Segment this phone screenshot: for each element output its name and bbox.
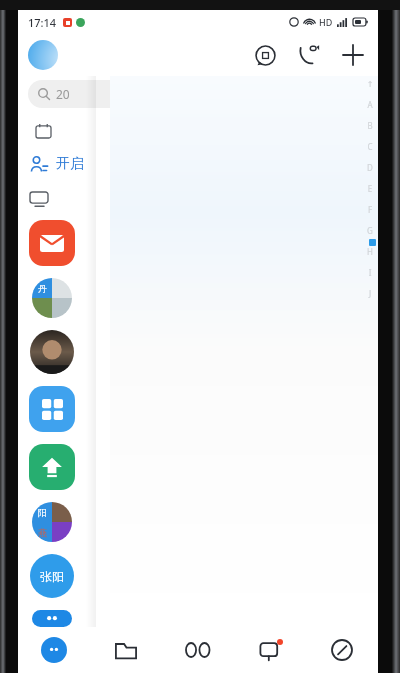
staticText: D bbox=[365, 162, 375, 173]
staticText: 阳 bbox=[38, 507, 47, 518]
button[interactable]: Messages bbox=[234, 627, 306, 673]
staticText: HD bbox=[319, 16, 333, 28]
staticText: 燕 bbox=[38, 527, 47, 538]
staticText: 张阳 bbox=[40, 569, 64, 584]
button[interactable]: 20 bbox=[28, 80, 368, 108]
staticText: 丹 bbox=[38, 283, 47, 294]
button[interactable]: Video call bbox=[294, 40, 324, 70]
button[interactable]: Discover bbox=[306, 627, 378, 673]
button[interactable]: Contact photo bbox=[30, 330, 74, 374]
staticText: B bbox=[365, 120, 375, 131]
button[interactable]: Files bbox=[90, 627, 162, 673]
staticText: J bbox=[365, 288, 375, 299]
button[interactable]: Apps bbox=[29, 386, 75, 432]
button[interactable]: 张阳 bbox=[30, 554, 74, 598]
button[interactable]: Me bbox=[18, 627, 90, 673]
staticText: 17:14 bbox=[28, 15, 57, 30]
staticText: E bbox=[365, 183, 375, 194]
button[interactable]: Group chat 2 bbox=[32, 502, 72, 542]
staticText: 开启 bbox=[56, 155, 84, 173]
staticText: C bbox=[365, 141, 375, 152]
button[interactable]: Contacts bbox=[162, 627, 234, 673]
staticText: H bbox=[365, 246, 375, 257]
staticText: F bbox=[365, 204, 375, 215]
button[interactable]: Profile bbox=[28, 40, 58, 70]
button[interactable]: Group chat bbox=[32, 278, 72, 318]
staticText: G bbox=[365, 225, 375, 236]
staticText: 20 bbox=[56, 86, 70, 102]
button[interactable]: Mail bbox=[29, 220, 75, 266]
staticText: ↑ bbox=[365, 80, 375, 89]
staticText: A bbox=[365, 99, 375, 110]
button[interactable]: 开启 bbox=[18, 146, 378, 182]
button[interactable] bbox=[18, 182, 378, 216]
staticText: I bbox=[365, 267, 375, 278]
button[interactable]: Add bbox=[338, 40, 368, 70]
button[interactable]: Contact bbox=[32, 610, 72, 627]
button[interactable]: Upload bbox=[29, 444, 75, 490]
button[interactable]: Scan bbox=[250, 40, 280, 70]
button[interactable] bbox=[18, 116, 378, 146]
